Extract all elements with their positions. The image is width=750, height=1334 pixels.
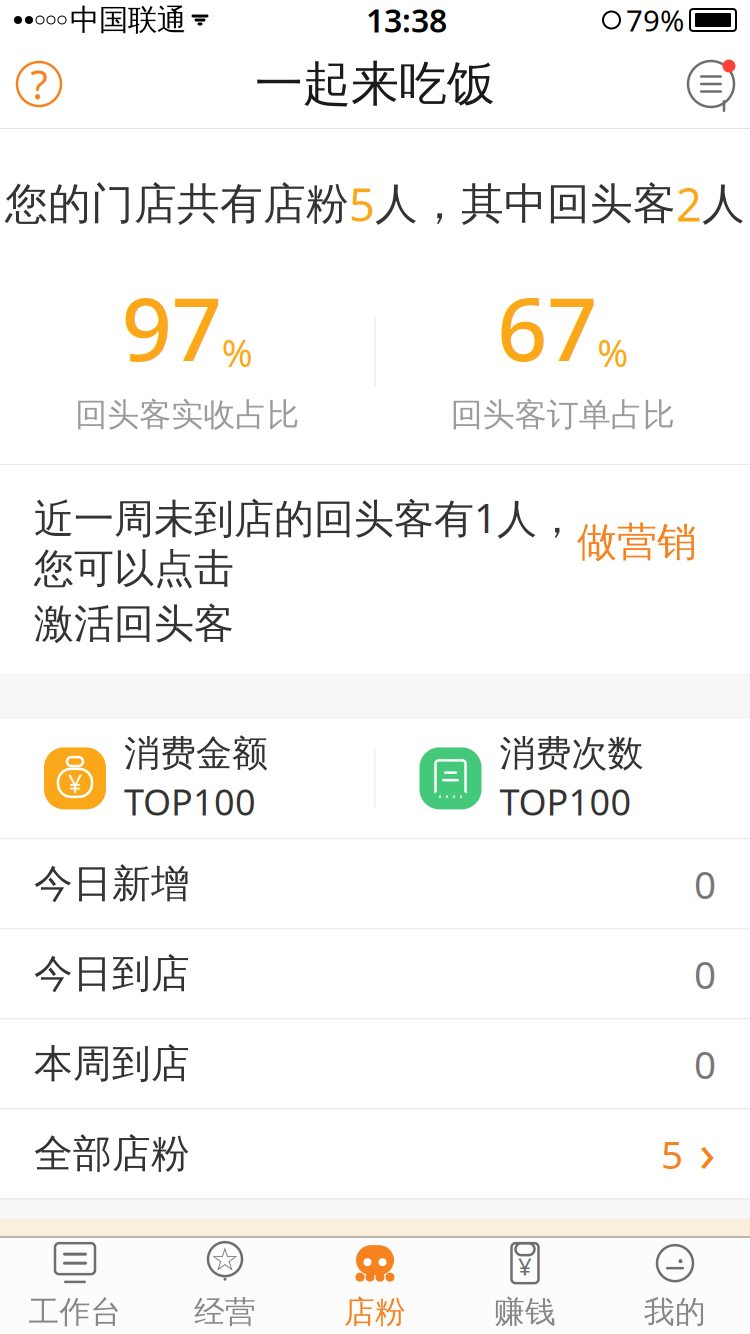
staticText: 近一周未到店的回头客有1人，您可以点击 [34,491,577,593]
staticText: 今日新增 [34,860,190,908]
button[interactable]: 近一周未到店的回头客有1人，您可以点击 [0,465,750,674]
staticText: 13:38 [366,0,447,41]
staticText: 中国联通 [70,2,186,38]
staticText: 人 [702,178,745,230]
staticText: 67 [497,268,597,385]
staticText: 经营 [194,1293,256,1331]
staticText: % [222,328,253,377]
staticText: 您的门店共有店粉 [5,178,349,230]
staticText: 全部店粉 [34,1130,190,1178]
staticText: ¥ [518,1250,532,1282]
button[interactable]: 消息 [672,40,750,128]
staticText: ¥ [68,766,82,800]
staticText: ☆ [210,1241,239,1277]
button[interactable]: 今日新增 [0,839,750,929]
button[interactable]: ☆ [150,1238,300,1334]
staticText: 0 [694,1038,716,1089]
button[interactable]: 我的 [600,1238,750,1334]
staticText: 做营销 [577,518,697,567]
staticText: 店粉 [344,1293,406,1331]
button[interactable]: 今日到店 [0,929,750,1019]
staticText: 工作台 [28,1293,121,1331]
staticText: 79% [626,0,684,39]
staticText: 5 [661,1128,683,1179]
button[interactable]: 店粉 [300,1238,450,1334]
staticText: 2 [676,174,702,234]
staticText: 激活回头客 [34,599,234,648]
button[interactable]: 工作台 [0,1238,150,1334]
staticText: 消费金额 [124,731,268,776]
staticText: 0 [694,858,716,909]
staticText: 我的 [644,1293,706,1331]
staticText: 一起来吃饭 [255,54,495,113]
staticText: 赚钱 [494,1293,556,1331]
staticText: % [597,328,628,377]
button[interactable]: 本周到店 [0,1019,750,1109]
button[interactable]: ¥ [450,1238,600,1334]
staticText: 消费次数 [499,731,643,776]
staticText: 人，其中回头客 [375,178,676,230]
staticText: TOP100 [124,778,256,825]
staticText: TOP100 [499,778,631,825]
button[interactable]: 帮助 [0,40,78,128]
staticText: 本周到店 [34,1040,190,1088]
staticText: 今日到店 [34,950,190,998]
staticText: › [699,1116,716,1187]
staticText: ? [30,57,47,110]
staticText: 97 [122,268,222,385]
button[interactable]: 消费次数 [375,718,750,838]
staticText: 5 [349,174,375,234]
staticText: 回头客订单占比 [451,395,675,435]
button[interactable]: 全部店粉 [0,1109,750,1199]
button[interactable]: ¥ [0,718,374,838]
staticText: 0 [694,948,716,999]
staticText: 回头客实收占比 [75,395,299,435]
